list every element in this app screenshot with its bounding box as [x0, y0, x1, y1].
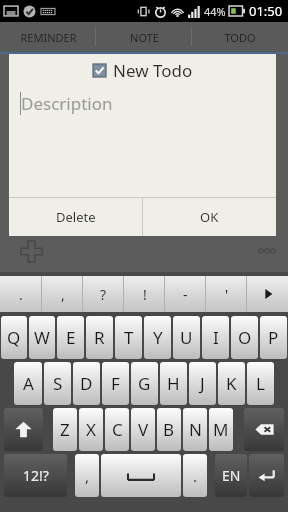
button[interactable]: Z [53, 408, 77, 451]
staticText: P [268, 326, 279, 349]
staticText: I [213, 326, 219, 349]
staticText: Description [21, 92, 113, 115]
staticText: U [180, 326, 193, 349]
button[interactable]: N [183, 408, 207, 451]
button[interactable]: ' [206, 276, 247, 312]
button[interactable]: . [0, 276, 42, 312]
button[interactable]: Delete [9, 198, 142, 236]
staticText: N [189, 418, 202, 441]
staticText: 44% [204, 4, 226, 19]
staticText: X [86, 418, 96, 441]
staticText: 01:50 [249, 2, 283, 20]
staticText: ! [143, 285, 147, 304]
button[interactable]: H [160, 362, 187, 405]
button[interactable]: Add [16, 236, 46, 266]
staticText: EN [222, 466, 241, 485]
button[interactable]: P [260, 316, 287, 359]
button[interactable]: B [157, 408, 181, 451]
staticText: NOTE [130, 30, 159, 45]
button[interactable]: OK [143, 198, 276, 236]
button[interactable]: K [218, 362, 245, 405]
button[interactable]: ? [83, 276, 124, 312]
staticText: T [124, 326, 134, 349]
button[interactable]: I [202, 316, 229, 359]
button[interactable]: D [73, 362, 100, 405]
staticText: L [256, 372, 265, 395]
button[interactable]: TODO [192, 22, 288, 52]
button[interactable]: G [131, 362, 158, 405]
button[interactable]: S [44, 362, 71, 405]
staticText: H [167, 372, 180, 395]
button[interactable]: 12!? [4, 454, 67, 497]
button[interactable]: . [183, 454, 207, 497]
staticText: W [34, 326, 50, 349]
button[interactable]: J [189, 362, 216, 405]
button[interactable]: Next [247, 276, 288, 312]
staticText: ? [100, 285, 107, 304]
button[interactable]: M [209, 408, 233, 451]
button[interactable]: , [42, 276, 83, 312]
button[interactable]: - [165, 276, 206, 312]
staticText: Z [60, 418, 70, 441]
staticText: S [53, 372, 63, 395]
button[interactable]: O [231, 316, 258, 359]
button[interactable]: Space [101, 454, 181, 497]
staticText: C [112, 418, 123, 441]
button[interactable]: Description [9, 86, 276, 197]
staticText: A [23, 372, 34, 395]
button[interactable]: E [57, 316, 84, 359]
staticText: F [111, 372, 120, 395]
staticText: - [183, 285, 188, 304]
staticText: Q [7, 326, 21, 349]
staticText: D [80, 372, 93, 395]
button[interactable]: Shift [4, 408, 43, 451]
button[interactable]: X [79, 408, 103, 451]
button[interactable]: F [102, 362, 129, 405]
staticText: M [213, 418, 229, 441]
button[interactable]: T [115, 316, 142, 359]
staticText: . [19, 285, 23, 304]
button[interactable]: R [86, 316, 113, 359]
staticText: O [238, 326, 252, 349]
staticText: B [163, 418, 175, 441]
button[interactable]: V [131, 408, 155, 451]
button[interactable]: U [173, 316, 200, 359]
staticText: E [66, 326, 76, 349]
button[interactable]: Q [1, 316, 27, 359]
staticText: Delete [56, 208, 96, 226]
button[interactable]: Enter [249, 454, 284, 497]
button[interactable]: L [247, 362, 274, 405]
button[interactable]: ! [124, 276, 165, 312]
staticText: TODO [224, 30, 256, 45]
button[interactable]: REMINDER [0, 22, 96, 52]
staticText: V [138, 418, 149, 441]
staticText: . [193, 466, 198, 486]
staticText: , [61, 285, 65, 304]
button[interactable]: W [29, 316, 55, 359]
button[interactable]: C [105, 408, 129, 451]
staticText: G [138, 372, 151, 395]
staticText: Y [153, 326, 163, 349]
staticText: K [226, 372, 237, 395]
button[interactable]: EN [215, 454, 247, 497]
button[interactable]: More options [254, 238, 280, 264]
staticText: ' [225, 285, 229, 304]
button[interactable]: Y [144, 316, 171, 359]
staticText: REMINDER [20, 30, 77, 45]
staticText: New Todo [113, 59, 193, 82]
staticText: OK [200, 208, 219, 226]
button[interactable]: Backspace [244, 408, 284, 451]
staticText: R [94, 326, 105, 349]
staticText: 12!? [23, 466, 49, 485]
button[interactable]: , [75, 454, 99, 497]
staticText: J [200, 372, 205, 395]
staticText: , [85, 466, 90, 486]
button[interactable]: NOTE [96, 22, 192, 52]
button[interactable]: A [14, 362, 42, 405]
